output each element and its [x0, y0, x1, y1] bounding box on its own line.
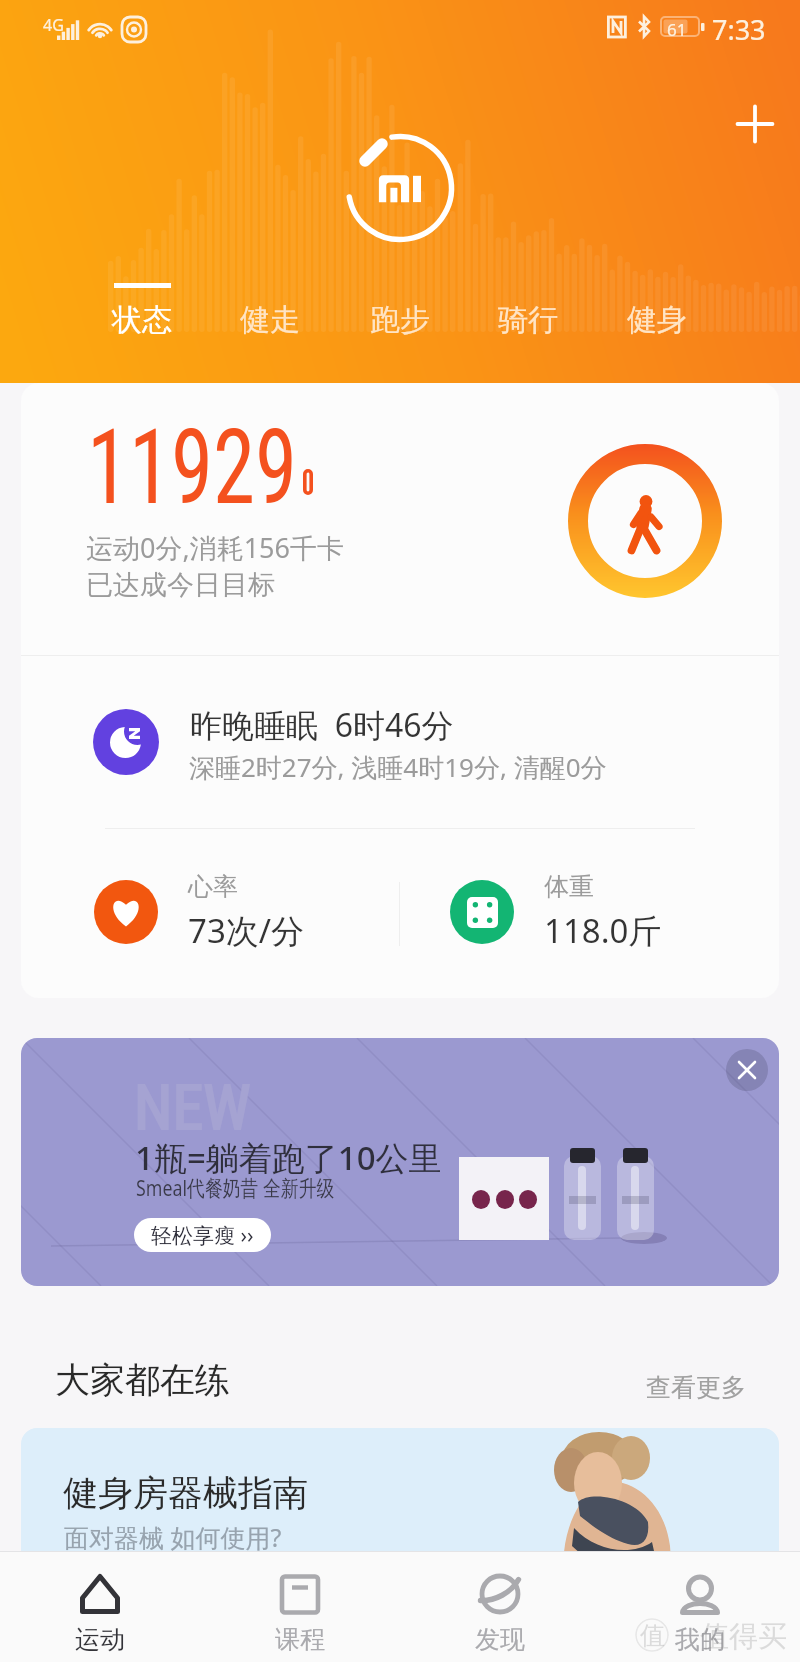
staticText: 轻松享瘦 ››: [151, 1221, 254, 1250]
button[interactable]: NEW: [21, 1038, 779, 1286]
staticText: NEW: [134, 1071, 251, 1144]
button[interactable]: 我的: [600, 1552, 800, 1655]
staticText: 73次/分: [188, 908, 305, 953]
button[interactable]: 健走: [220, 283, 320, 339]
staticText: 健走: [240, 301, 300, 339]
staticText: 1瓶=躺着跑了10公里: [135, 1135, 442, 1180]
staticText: 发现: [475, 1624, 525, 1655]
staticText: 健身房器械指南: [63, 1471, 308, 1515]
button[interactable]: 骑行: [478, 283, 578, 339]
button[interactable]: 健身: [607, 283, 707, 339]
staticText: 深睡2时27分, 浅睡4时19分, 清醒0分: [189, 749, 607, 785]
staticText: 心率: [188, 871, 238, 902]
staticText: 我的: [675, 1624, 725, 1655]
staticText: 运动: [75, 1624, 125, 1655]
staticText: 状态: [112, 301, 172, 339]
staticText: 值: [640, 1620, 665, 1651]
button[interactable]: 体重: [450, 867, 750, 957]
staticText: 运动0分,消耗156千卡: [86, 529, 345, 566]
staticText: 体重: [544, 871, 594, 902]
staticText: 健身: [627, 301, 687, 339]
button[interactable]: 课程: [200, 1552, 400, 1655]
staticText: 昨晚睡眠 6时46分: [190, 703, 454, 747]
staticText: Smeal代餐奶昔 全新升级: [136, 1172, 334, 1202]
staticText: 11929: [87, 407, 297, 529]
button[interactable]: Close: [726, 1049, 768, 1091]
button[interactable]: 状态: [92, 283, 192, 339]
staticText: 面对器械 如何使用?: [64, 1520, 282, 1554]
button[interactable]: 健身房器械指南: [21, 1428, 779, 1628]
staticText: 61: [667, 18, 687, 41]
staticText: 跑步: [370, 301, 430, 339]
staticText: 已达成今日目标: [86, 568, 275, 602]
staticText: 大家都在练: [55, 1358, 230, 1402]
staticText: 骑行: [498, 301, 558, 339]
button[interactable]: 发现: [400, 1552, 600, 1655]
button[interactable]: Add: [723, 92, 787, 156]
button[interactable]: 跑步: [350, 283, 450, 339]
staticText: 值得买: [700, 1618, 787, 1655]
button[interactable]: 心率: [94, 867, 394, 957]
staticText: 课程: [275, 1624, 325, 1655]
button[interactable]: 运动: [0, 1552, 200, 1655]
staticText: 4G: [43, 14, 64, 36]
staticText: 118.0斤: [544, 908, 662, 953]
staticText: 7:33: [712, 11, 766, 48]
button[interactable]: 轻松享瘦 ››: [134, 1218, 271, 1252]
button[interactable]: 查看更多: [646, 1372, 746, 1403]
staticText: 查看更多: [646, 1372, 746, 1403]
